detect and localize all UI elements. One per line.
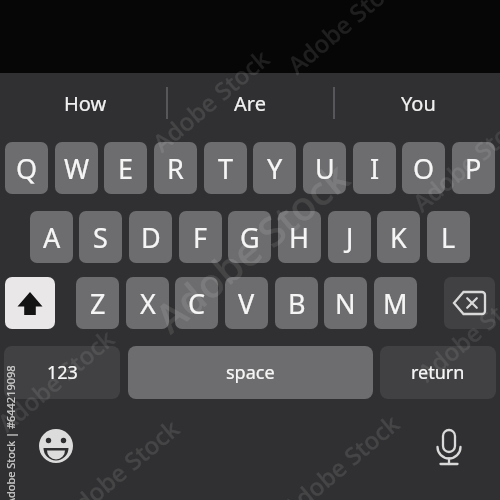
staticText: I <box>370 150 380 187</box>
button[interactable]: You <box>368 88 468 118</box>
staticText: return <box>411 360 465 385</box>
button[interactable]: C <box>175 277 218 329</box>
staticText: C <box>188 285 206 322</box>
staticText: Y <box>267 150 283 187</box>
button[interactable]: Are <box>200 88 300 118</box>
staticText: How <box>64 90 107 117</box>
button[interactable]: Y <box>253 142 296 194</box>
staticText: K <box>390 219 407 256</box>
staticText: V <box>238 285 255 322</box>
button[interactable] <box>36 426 76 466</box>
staticText: S <box>93 219 108 256</box>
staticText: Adobe Stock <box>280 0 411 81</box>
staticText: Adobe Stock <box>410 271 500 389</box>
button[interactable]: J <box>328 211 371 263</box>
staticText: D <box>141 219 161 256</box>
button[interactable]: E <box>104 142 147 194</box>
staticText: Adobe Stock <box>0 321 121 439</box>
button[interactable]: H <box>278 211 321 263</box>
staticText: G <box>240 219 260 256</box>
button[interactable]: B <box>275 277 318 329</box>
button[interactable]: W <box>55 142 98 194</box>
button[interactable] <box>429 426 469 466</box>
button[interactable]: K <box>377 211 420 263</box>
staticText: O <box>413 150 435 187</box>
staticText: M <box>383 285 408 322</box>
staticText: Adobe Stock | #644219098 <box>3 365 18 500</box>
button[interactable]: T <box>204 142 247 194</box>
staticText: space <box>226 360 275 385</box>
staticText: Adobe Stock <box>405 101 500 219</box>
button[interactable]: L <box>427 211 470 263</box>
staticText: W <box>64 150 90 187</box>
staticText: You <box>401 90 436 117</box>
staticText: P <box>465 150 482 187</box>
staticText: Z <box>90 285 106 322</box>
staticText: F <box>193 219 208 256</box>
staticText: X <box>140 285 156 322</box>
staticText: N <box>335 285 356 322</box>
button[interactable]: return <box>380 346 496 399</box>
staticText: Q <box>16 150 38 187</box>
staticText: T <box>218 150 234 187</box>
button[interactable]: N <box>324 277 367 329</box>
staticText: Are <box>234 90 266 117</box>
button[interactable]: 123 <box>4 346 120 399</box>
staticText: H <box>289 219 310 256</box>
button[interactable]: V <box>225 277 268 329</box>
staticText: U <box>315 150 335 187</box>
button[interactable]: X <box>126 277 169 329</box>
staticText: Adobe Stock <box>55 411 186 500</box>
button[interactable] <box>5 277 55 329</box>
button[interactable]: S <box>79 211 122 263</box>
staticText: Adobe Stock <box>145 41 276 159</box>
staticText: L <box>441 219 456 256</box>
staticText: E <box>118 150 134 187</box>
staticText: R <box>167 150 184 187</box>
button[interactable] <box>444 277 495 329</box>
button[interactable]: M <box>374 277 417 329</box>
button[interactable]: D <box>129 211 172 263</box>
button[interactable]: R <box>154 142 197 194</box>
button[interactable]: A <box>30 211 73 263</box>
staticText: J <box>346 219 354 256</box>
staticText: 123 <box>47 360 78 385</box>
button[interactable]: Z <box>76 277 119 329</box>
staticText: B <box>288 285 306 322</box>
button[interactable]: I <box>353 142 396 194</box>
staticText: A <box>43 219 61 256</box>
button[interactable]: G <box>228 211 271 263</box>
button[interactable]: How <box>35 88 135 118</box>
button[interactable]: P <box>452 142 495 194</box>
button[interactable]: space <box>128 346 373 399</box>
staticText: Adobe Stock <box>143 149 357 341</box>
button[interactable]: Q <box>5 142 48 194</box>
button[interactable]: F <box>179 211 222 263</box>
button[interactable]: O <box>402 142 445 194</box>
button[interactable]: U <box>303 142 346 194</box>
staticText: Adobe Stock <box>275 406 406 500</box>
